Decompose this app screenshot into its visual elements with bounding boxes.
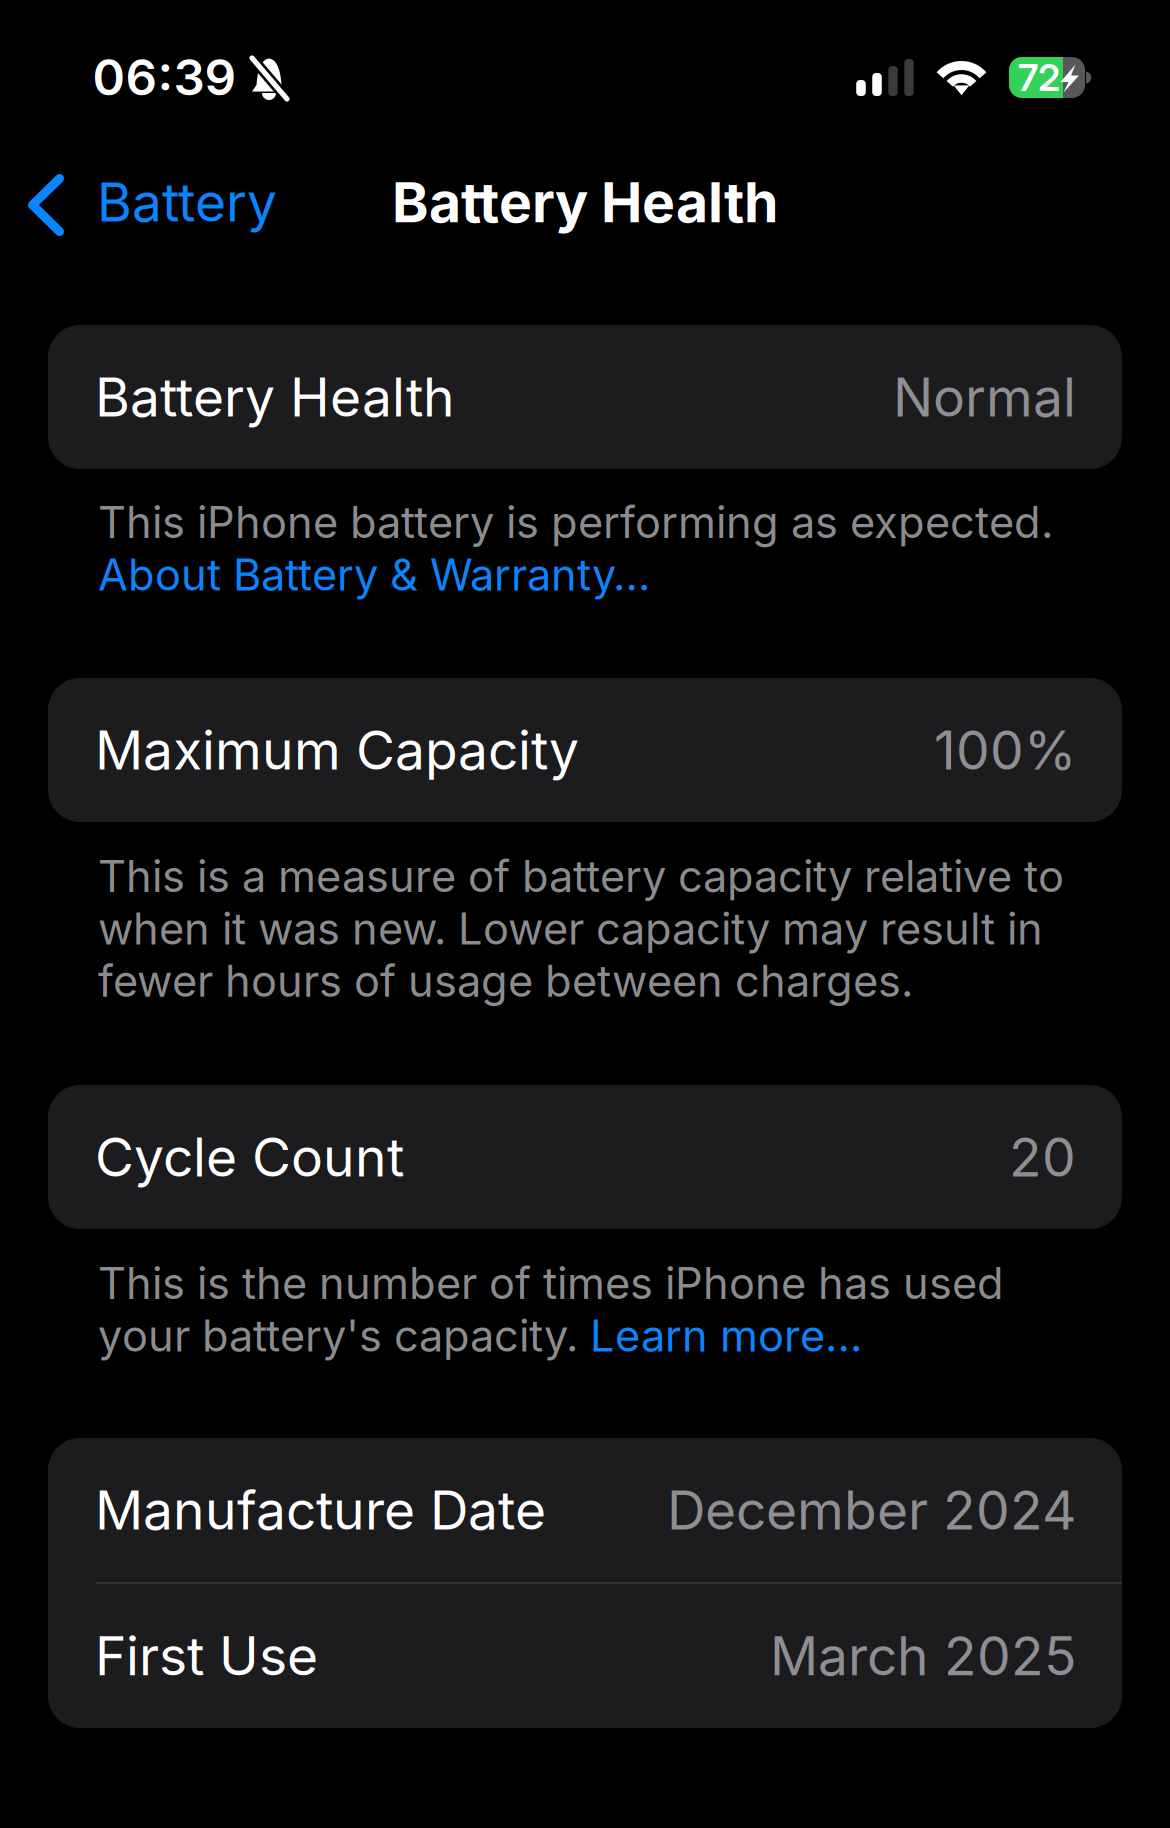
staticText: Battery Health bbox=[95, 365, 455, 429]
staticText: Manufacture Date bbox=[95, 1478, 546, 1542]
button[interactable]: Cycle Count bbox=[48, 1085, 1122, 1229]
button[interactable]: Battery bbox=[0, 154, 295, 250]
staticText: Learn more… bbox=[590, 1309, 862, 1362]
staticText: This is a measure of battery capacity re… bbox=[98, 850, 1064, 1007]
staticText: First Use bbox=[95, 1623, 318, 1688]
staticText: Normal bbox=[893, 365, 1076, 429]
staticText: Battery Health bbox=[392, 168, 778, 235]
button[interactable]: Manufacture Date bbox=[48, 1438, 1122, 1582]
staticText: 100% bbox=[934, 718, 1076, 782]
staticText: Maximum Capacity bbox=[95, 718, 579, 782]
staticText: December 2024 bbox=[667, 1478, 1076, 1542]
staticText: Battery bbox=[97, 170, 277, 234]
button[interactable]: Learn more… bbox=[590, 1309, 862, 1362]
button[interactable]: About Battery & Warranty… bbox=[0, 548, 1108, 601]
staticText: This is the number of times iPhone has u… bbox=[98, 1257, 1004, 1309]
staticText: Cycle Count bbox=[95, 1125, 404, 1189]
staticText: 06:39 bbox=[92, 47, 236, 107]
button[interactable]: Battery Health bbox=[48, 325, 1122, 469]
staticText: This iPhone battery is performing as exp… bbox=[98, 496, 1053, 548]
staticText: About Battery & Warranty… bbox=[98, 548, 650, 601]
button[interactable]: First Use bbox=[48, 1584, 1122, 1728]
staticText: March 2025 bbox=[770, 1623, 1076, 1688]
staticText: 72 bbox=[1018, 55, 1060, 100]
button[interactable]: Maximum Capacity bbox=[48, 678, 1122, 822]
staticText: 20 bbox=[1009, 1125, 1076, 1189]
staticText: your battery's capacity. bbox=[98, 1309, 590, 1362]
